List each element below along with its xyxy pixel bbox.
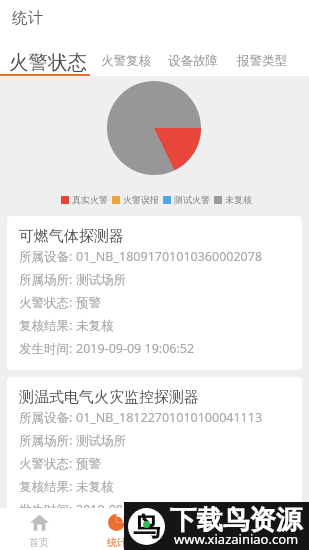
- staticText: 设备故障: [168, 53, 218, 69]
- button[interactable]: 测温式电气火灾监控探测器: [7, 377, 302, 531]
- button[interactable]: 统计: [78, 514, 155, 550]
- button[interactable]: 首页: [0, 514, 78, 550]
- staticText: 2019-09-09 19:06:52: [76, 501, 195, 518]
- staticText: 预警: [76, 456, 101, 472]
- staticText: 下载鸟资源: [170, 503, 303, 536]
- staticText: 可燃气体探测器: [19, 227, 124, 245]
- staticText: 预警: [76, 295, 101, 311]
- staticText: 测试火警: [174, 194, 210, 205]
- staticText: 火警状态:: [19, 294, 76, 311]
- staticText: 消息: [184, 536, 204, 549]
- staticText: 统计: [12, 8, 43, 28]
- button[interactable]: 消息: [155, 514, 232, 550]
- staticText: 所属场所:: [19, 432, 76, 449]
- staticText: 真实火警: [72, 194, 108, 205]
- staticText: 测试场所: [76, 433, 126, 449]
- button[interactable]: 报警类型: [237, 53, 287, 69]
- staticText: 火警误报: [123, 194, 159, 205]
- staticText: 未复核: [76, 479, 114, 495]
- staticText: 发生时间:: [19, 340, 76, 357]
- staticText: 发生时间:: [19, 501, 76, 518]
- staticText: 所属设备:: [19, 409, 76, 426]
- staticText: 所属场所:: [19, 271, 76, 288]
- staticText: 统计: [107, 536, 127, 549]
- button[interactable]: 设备故障: [168, 53, 218, 69]
- staticText: 测温式电气火灾监控探测器: [19, 388, 199, 406]
- staticText: 火警状态:: [19, 455, 76, 472]
- staticText: 复核结果:: [19, 317, 76, 334]
- staticText: 报警类型: [237, 53, 287, 69]
- staticText: 所属设备:: [19, 248, 76, 265]
- staticText: 未复核: [76, 318, 114, 334]
- staticText: www.xiazainiao.com: [174, 530, 299, 548]
- staticText: 2019-09-09 19:06:52: [76, 340, 195, 357]
- staticText: 鸟: [133, 510, 160, 544]
- staticText: 01_NB_18091701010360002078: [76, 248, 263, 265]
- staticText: 首页: [29, 536, 49, 549]
- staticText: 火警状态: [9, 50, 87, 75]
- staticText: 01_NB_18122701010100041113: [76, 409, 263, 426]
- staticText: 我的: [261, 536, 281, 549]
- button[interactable]: 火警状态: [9, 50, 87, 75]
- button[interactable]: 我的: [232, 514, 309, 550]
- staticText: 测试场所: [76, 272, 126, 288]
- staticText: 未复核: [225, 194, 252, 205]
- staticText: 复核结果:: [19, 478, 76, 495]
- button[interactable]: 火警复核: [101, 53, 151, 69]
- button[interactable]: 可燃气体探测器: [7, 216, 302, 370]
- staticText: 火警复核: [101, 53, 151, 69]
